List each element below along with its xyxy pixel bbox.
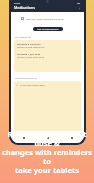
staticText: Record of your tablet dose & changes wit… — [0, 129, 94, 176]
button[interactable]: Medications — [36, 133, 60, 143]
button[interactable]: Took my Tablet today(05/08/2020) — [11, 14, 84, 22]
button[interactable]: Warfarin 5 Aug 2020 — [14, 40, 81, 72]
staticText: 31/05/2020 Tablet taken — [20, 84, 45, 87]
staticText: 4G — [77, 1, 81, 4]
staticText: Should UK long taken 09:00 — [17, 56, 45, 59]
button[interactable]: Settings — [60, 133, 84, 143]
staticText: Warfarin 1 July 2020 — [17, 52, 41, 55]
button[interactable]: More options — [78, 7, 81, 10]
staticText: Medications taken on — [15, 77, 38, 80]
button[interactable]: ADD TO MEDICATIONS — [33, 27, 63, 31]
staticText: Took my Tablet today(05/08/2020) — [26, 17, 64, 20]
staticText: Medications — [14, 5, 35, 10]
staticText: Warfarin 5 Aug 2020 — [17, 42, 41, 45]
button[interactable]: Home — [11, 133, 36, 143]
staticText: My Medications — [15, 36, 32, 39]
button[interactable]: ✓ — [14, 81, 81, 131]
staticText: ADD TO MEDICATIONS — [37, 28, 59, 31]
staticText: ✓ — [16, 84, 19, 87]
staticText: Should UK long Taken 09:00 — [17, 46, 45, 49]
staticText: 10:42 — [14, 1, 21, 4]
